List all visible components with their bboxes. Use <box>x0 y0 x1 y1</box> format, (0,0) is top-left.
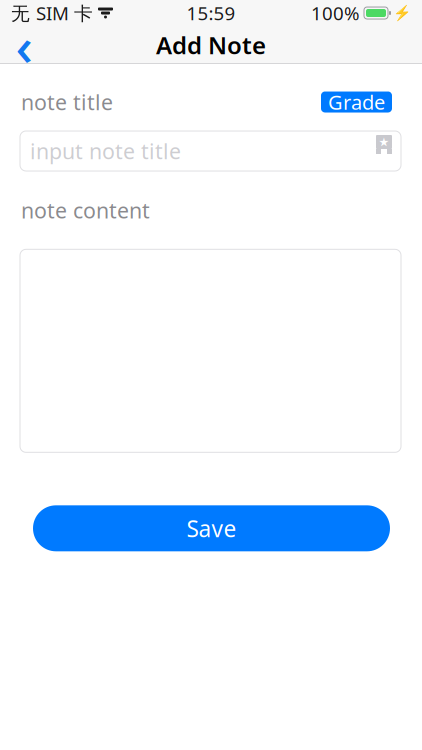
button[interactable]: Note title field <box>20 131 401 171</box>
button[interactable]: Save <box>33 505 390 551</box>
staticText: input note title <box>30 137 181 165</box>
staticText: ⚡ <box>393 5 411 21</box>
staticText: 无 SIM 卡 <box>11 1 93 25</box>
staticText: ★ <box>378 135 389 149</box>
staticText: Grade <box>328 89 385 115</box>
staticText: note content <box>21 196 150 224</box>
staticText: Add Note <box>156 29 266 61</box>
button[interactable]: Back <box>0 26 48 64</box>
button[interactable]: Grade <box>321 91 392 112</box>
staticText: 100% <box>311 1 360 25</box>
staticText: 15:59 <box>186 1 235 25</box>
staticText: Save <box>186 513 236 543</box>
staticText: note title <box>21 88 113 116</box>
staticText: ‹ <box>15 10 32 80</box>
